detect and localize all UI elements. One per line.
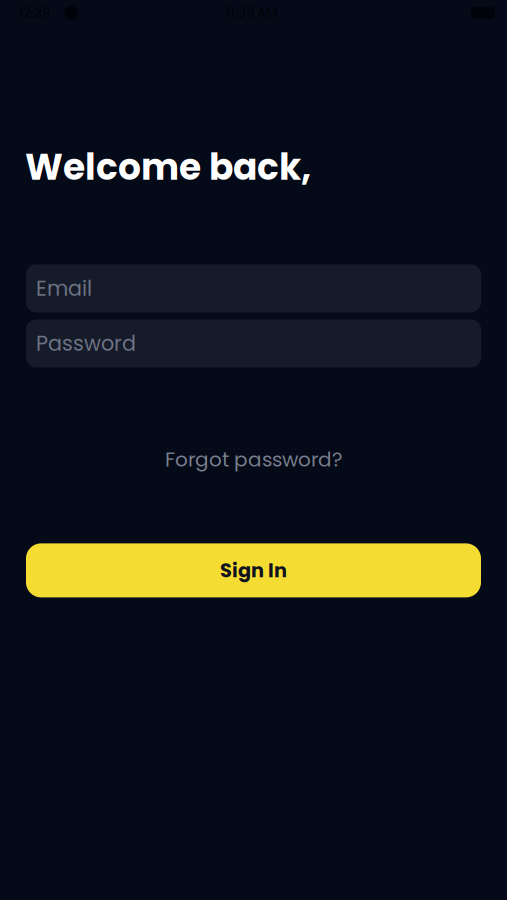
staticText: Welcome back, [25,142,311,192]
button[interactable]: Password [26,319,481,367]
button[interactable]: Sign In [26,543,481,597]
button[interactable]: Forgot password? [165,445,342,473]
staticText: 12:39 [18,4,50,22]
staticText: Forgot password? [165,445,342,473]
staticText: 11:39 AM [225,4,278,22]
staticText: Password [36,329,136,358]
button[interactable]: Email [26,264,481,312]
staticText: Email [36,274,92,303]
staticText: Sign In [220,557,287,584]
